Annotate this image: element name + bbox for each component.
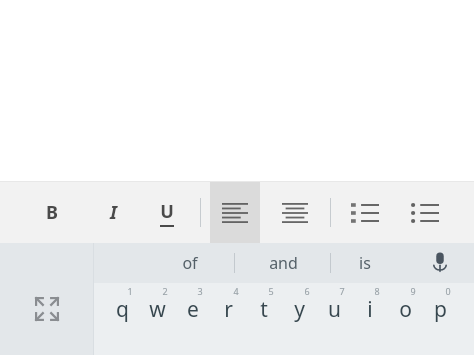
staticText: e <box>187 295 199 324</box>
button[interactable]: is <box>337 243 393 283</box>
staticText: 7 <box>339 285 345 297</box>
staticText: y <box>294 295 305 324</box>
button[interactable]: Voice input <box>422 243 458 283</box>
button[interactable]: Numbered list <box>341 182 389 243</box>
button[interactable]: of <box>162 243 218 283</box>
staticText: and <box>269 252 298 274</box>
staticText: t <box>260 295 268 324</box>
button[interactable]: 6 <box>282 283 317 355</box>
staticText: 4 <box>233 285 239 297</box>
staticText: B <box>46 200 58 225</box>
staticText: 0 <box>445 285 451 297</box>
staticText: U <box>160 199 174 224</box>
staticText: of <box>182 252 198 274</box>
staticText: 9 <box>410 285 416 297</box>
button[interactable]: 1 <box>105 283 140 355</box>
staticText: 6 <box>304 285 310 297</box>
button[interactable]: Underline <box>150 182 184 243</box>
button[interactable]: Align left <box>210 182 260 243</box>
staticText: q <box>116 295 129 324</box>
staticText: w <box>149 295 166 324</box>
staticText: 3 <box>197 285 203 297</box>
button[interactable]: Italic <box>96 182 130 243</box>
staticText: 8 <box>374 285 380 297</box>
button[interactable]: 5 <box>246 283 281 355</box>
button[interactable]: Bulleted list <box>401 182 449 243</box>
staticText: is <box>359 252 371 274</box>
button[interactable]: 3 <box>175 283 210 355</box>
staticText: p <box>434 295 447 324</box>
staticText: 1 <box>127 285 133 297</box>
button[interactable]: 8 <box>352 283 387 355</box>
button[interactable]: 2 <box>140 283 175 355</box>
button[interactable]: 4 <box>211 283 246 355</box>
staticText: 5 <box>268 285 274 297</box>
button[interactable]: Align center <box>270 182 320 243</box>
staticText: r <box>224 295 233 324</box>
button[interactable]: and <box>255 243 311 283</box>
button[interactable]: 9 <box>388 283 423 355</box>
staticText: i <box>367 295 373 324</box>
button[interactable]: 7 <box>317 283 352 355</box>
staticText: 2 <box>162 285 168 297</box>
button[interactable]: 0 <box>423 283 458 355</box>
staticText: I <box>110 200 117 225</box>
staticText: u <box>328 295 341 324</box>
staticText: o <box>399 295 412 324</box>
button[interactable]: Resize keyboard <box>0 243 93 355</box>
button[interactable]: Bold <box>35 182 69 243</box>
